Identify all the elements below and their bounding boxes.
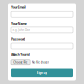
- staticText: Password: [11, 37, 25, 41]
- staticText: Attach Your id: [11, 52, 30, 57]
- staticText: e.g. John Doe: [12, 28, 30, 32]
- button[interactable]: Sign up: [11, 68, 73, 77]
- staticText: Choose File: [13, 60, 28, 64]
- button[interactable]: Choose File: [11, 60, 30, 65]
- staticText: Your Email: [11, 5, 26, 9]
- staticText: No file chosen: [32, 60, 49, 64]
- staticText: Sign up: [37, 71, 47, 75]
- staticText: Your Name: [11, 21, 27, 26]
